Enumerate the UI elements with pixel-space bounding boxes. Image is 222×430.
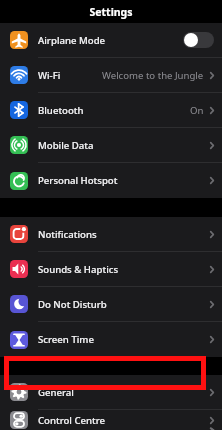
button[interactable]: Control Centre — [0, 410, 222, 430]
button[interactable]: Personal Hotspot — [0, 163, 222, 198]
button[interactable]: Notifications — [0, 217, 222, 251]
button[interactable]: Mobile Data — [0, 128, 222, 162]
button[interactable]: Bluetooth — [0, 93, 222, 127]
staticText: Sounds & Haptics — [38, 263, 119, 276]
button[interactable]: Do Not Disturb — [0, 287, 222, 321]
staticText: Wi-Fi — [38, 69, 61, 82]
button[interactable]: Airplane Mode — [0, 23, 222, 57]
staticText: Settings — [89, 5, 133, 19]
button[interactable]: Sounds & Haptics — [0, 252, 222, 286]
staticText: Notifications — [38, 228, 97, 241]
button[interactable]: Wi-Fi — [0, 58, 222, 92]
staticText: Bluetooth — [38, 104, 84, 117]
staticText: On — [190, 104, 204, 117]
button[interactable]: Screen Time — [0, 322, 222, 357]
staticText: Screen Time — [38, 333, 94, 346]
button[interactable]: General — [0, 375, 222, 409]
staticText: Do Not Disturb — [38, 298, 107, 311]
staticText: Airplane Mode — [38, 34, 106, 47]
staticText: Mobile Data — [38, 139, 94, 152]
staticText: Personal Hotspot — [38, 174, 118, 187]
staticText: Control Centre — [38, 414, 106, 427]
staticText: Welcome to the Jungle — [102, 69, 204, 82]
staticText: General — [38, 386, 74, 399]
button[interactable]: Airplane Mode toggle, off — [183, 32, 214, 48]
